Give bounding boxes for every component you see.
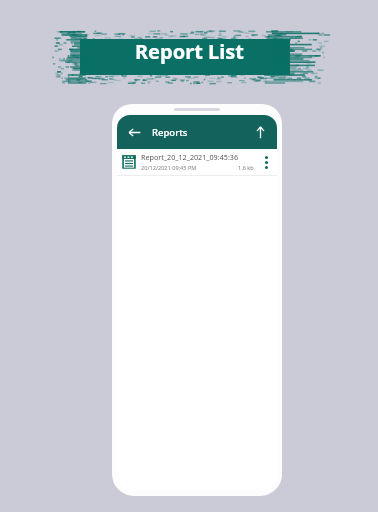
staticText: Reports (152, 126, 188, 139)
staticText: 1.6 kb (238, 164, 254, 172)
staticText: 20/12/2021 09:45 PM (141, 164, 197, 172)
button[interactable]: Scroll to top (249, 121, 271, 143)
staticText: Report List (135, 38, 244, 65)
button[interactable]: More options (258, 150, 274, 174)
staticText: Report_20_12_2021_09:45:36 PM.pdf (141, 152, 258, 162)
button[interactable]: Back (123, 121, 145, 143)
button[interactable]: Report_20_12_2021_09:45:36 PM.pdf (117, 149, 277, 175)
